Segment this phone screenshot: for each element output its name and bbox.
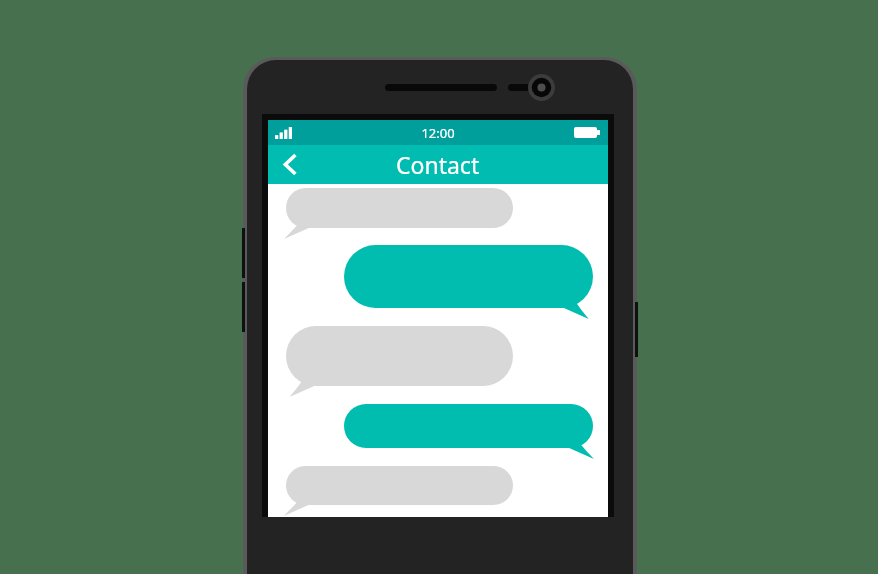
button[interactable] [344,404,593,459]
staticText: 12:00 [421,124,455,142]
button[interactable] [286,326,513,397]
button[interactable]: Back [268,145,312,184]
staticText: Contact [396,149,480,180]
button[interactable] [344,245,593,319]
button[interactable] [286,188,513,239]
button[interactable] [286,466,513,516]
